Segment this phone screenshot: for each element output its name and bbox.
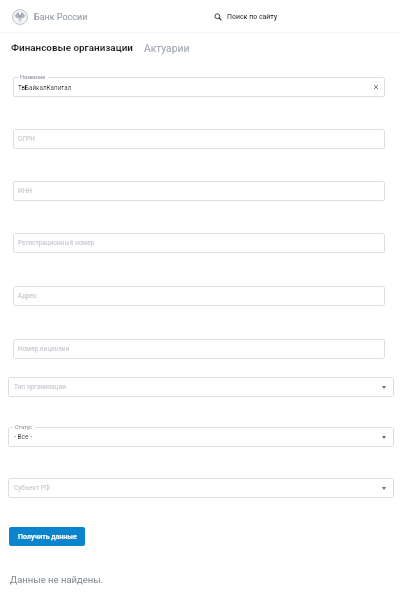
staticText: Получить данные <box>18 533 77 541</box>
staticText: ТвБайкалКапитал <box>18 84 72 91</box>
staticText: Субъект РФ <box>14 484 50 492</box>
staticText: Банк России <box>34 12 88 23</box>
staticText: Статус <box>15 424 33 430</box>
staticText: Поиск по сайту <box>227 13 278 21</box>
button[interactable]: Поиск <box>214 13 278 21</box>
staticText: Регистрационный номер <box>18 239 95 247</box>
button[interactable]: Получить данные <box>9 527 85 546</box>
staticText: ИНН <box>18 187 32 195</box>
button[interactable]: - Все - <box>8 427 394 447</box>
button[interactable]: Финансовые организации <box>11 42 133 54</box>
button[interactable]: Очистить <box>372 83 380 91</box>
staticText: - Все - <box>14 433 32 441</box>
button[interactable]: ТвБайкалКапитал <box>13 77 385 97</box>
staticText: ОГРН <box>18 135 35 143</box>
button[interactable]: Номер лицензии <box>13 339 385 359</box>
button[interactable]: Адрес <box>13 286 385 306</box>
staticText: Данные не найдены. <box>10 574 104 585</box>
button[interactable]: Тип организации <box>8 377 394 397</box>
staticText: Номер лицензии <box>18 345 70 353</box>
staticText: Тип организации <box>14 383 66 391</box>
button[interactable]: Субъект РФ <box>8 478 394 498</box>
staticText: Название <box>20 74 46 80</box>
other: Поиск <box>214 13 222 21</box>
button[interactable]: ОГРН <box>13 129 385 149</box>
staticText: Адрес <box>18 292 37 300</box>
button[interactable]: Актуарии <box>144 42 190 54</box>
button[interactable]: ИНН <box>13 181 385 201</box>
button[interactable]: Регистрационный номер <box>13 233 385 253</box>
button[interactable]: Банк России <box>12 9 88 25</box>
